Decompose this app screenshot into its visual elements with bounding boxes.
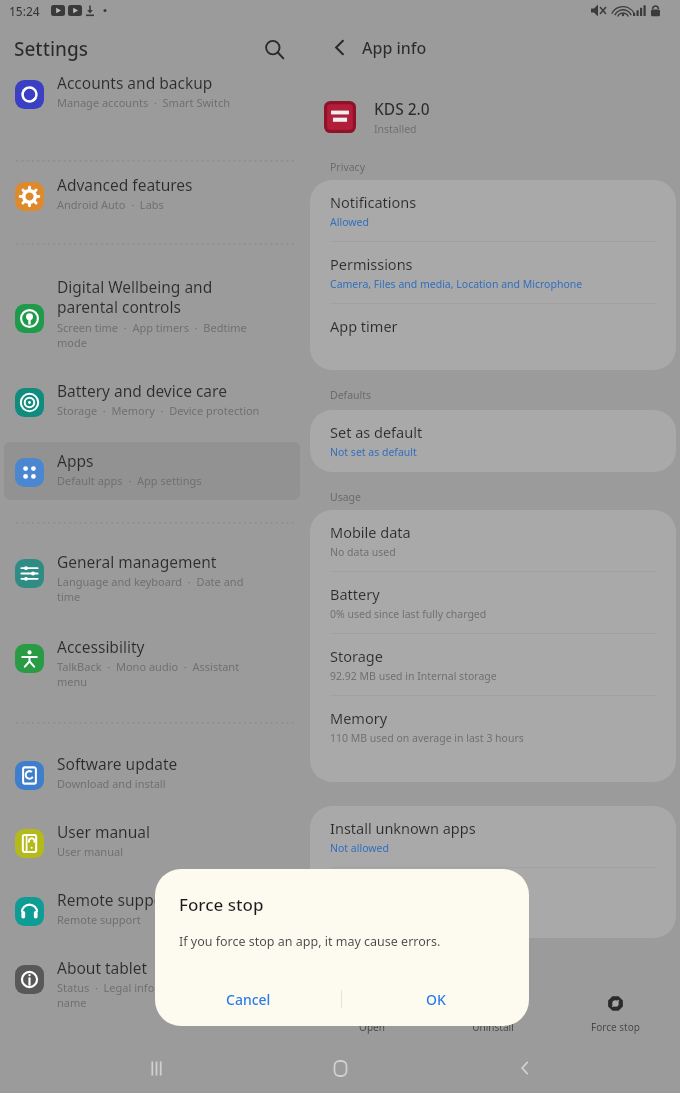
staticText: Apps — [57, 450, 94, 471]
staticText: Not allowed — [330, 841, 389, 855]
staticText: Defaults — [330, 388, 372, 402]
staticText: Android Auto · Labs — [57, 197, 164, 212]
button[interactable] — [4, 745, 300, 797]
staticText: Storage · Memory · Device protection — [57, 403, 260, 418]
button[interactable]: Notifications — [310, 180, 676, 241]
button[interactable]: Force stop — [559, 988, 671, 1034]
staticText: Mobile data — [330, 522, 411, 542]
staticText: User manual — [57, 821, 150, 842]
staticText: TalkBack · Mono audio · Assistant menu — [57, 659, 240, 689]
staticText: Install unknown apps — [330, 818, 476, 838]
button[interactable]: Uninstall — [437, 988, 549, 1034]
staticText: If you force stop an app, it may cause e… — [179, 933, 511, 950]
staticText: Download and install — [57, 776, 166, 791]
staticText: Memory — [330, 708, 388, 728]
staticText: Force stop — [179, 893, 264, 916]
staticText: User manual — [57, 844, 123, 859]
button[interactable]: Set as default — [310, 410, 676, 471]
staticText: Battery and device care — [57, 380, 227, 401]
staticText: Permissions — [330, 254, 413, 274]
button[interactable]: Back — [322, 30, 356, 64]
staticText: General management — [57, 551, 217, 572]
button[interactable]: App details — [310, 868, 676, 929]
staticText: Screen time · App timers · Bedtime mode — [57, 320, 247, 350]
staticText: KDS 2.0 — [374, 98, 430, 119]
staticText: Uninstall — [472, 1020, 514, 1034]
staticText: No data used — [330, 545, 396, 559]
button[interactable]: App timer — [310, 304, 676, 348]
staticText: Remote support — [57, 889, 176, 910]
staticText: 15:24 — [9, 3, 40, 19]
button[interactable] — [4, 813, 300, 865]
staticText: 110 MB used on average in last 3 hours — [330, 731, 524, 745]
button[interactable] — [4, 442, 300, 500]
staticText: Default apps · App settings — [57, 473, 202, 488]
staticText: Allowed — [330, 215, 369, 229]
button[interactable]: Open — [316, 988, 428, 1034]
staticText: Status · Legal information · Tablet name — [57, 980, 242, 1010]
button[interactable] — [4, 64, 300, 116]
staticText: 0% used since last fully charged — [330, 607, 487, 621]
staticText: App info — [362, 37, 427, 59]
staticText: Manage accounts · Smart Switch — [57, 95, 230, 110]
button[interactable]: Recent apps — [127, 1043, 185, 1093]
staticText: Usage — [330, 490, 361, 504]
staticText: Remote support — [57, 912, 141, 927]
staticText: Software update — [57, 753, 178, 774]
staticText: 92.92 MB used in Internal storage — [330, 669, 497, 683]
button[interactable]: Install unknown apps — [310, 806, 676, 867]
button[interactable]: Memory — [310, 696, 676, 757]
staticText: Notifications — [330, 192, 417, 212]
staticText: Advanced features — [57, 174, 193, 195]
staticText: Installed — [374, 122, 417, 136]
button[interactable]: Cancel — [155, 977, 341, 1021]
staticText: Language and keyboard · Date and time — [57, 574, 244, 604]
button[interactable]: Home — [311, 1043, 369, 1093]
staticText: About tablet — [57, 957, 148, 978]
button[interactable] — [4, 881, 300, 933]
button[interactable]: Storage — [310, 634, 676, 695]
staticText: Digital Wellbeing and parental controls — [57, 276, 213, 318]
button[interactable] — [4, 543, 300, 609]
button[interactable] — [4, 949, 300, 1015]
button[interactable]: Permissions — [310, 242, 676, 303]
staticText: Battery — [330, 584, 380, 604]
button[interactable] — [4, 166, 300, 218]
staticText: App timer — [330, 316, 398, 336]
button[interactable]: Mobile data — [310, 510, 676, 571]
button[interactable]: Battery — [310, 572, 676, 633]
staticText: Accounts and backup — [57, 72, 213, 93]
button[interactable]: Back — [496, 1043, 554, 1093]
button[interactable] — [4, 372, 300, 424]
button[interactable] — [4, 628, 300, 694]
staticText: Camera, Files and media, Location and Mi… — [330, 277, 583, 291]
staticText: OK — [426, 990, 446, 1009]
staticText: Not set as default — [330, 445, 417, 459]
button[interactable]: KDS 2.0 — [324, 90, 614, 144]
staticText: Accessibility — [57, 636, 145, 657]
staticText: Open — [359, 1020, 385, 1034]
staticText: Privacy — [330, 160, 366, 174]
staticText: Storage — [330, 646, 383, 666]
staticText: Cancel — [226, 990, 271, 1009]
button[interactable]: Search — [256, 31, 292, 67]
button[interactable]: Settings — [14, 36, 88, 62]
button[interactable] — [4, 268, 300, 346]
staticText: Force stop — [591, 1020, 640, 1034]
staticText: Set as default — [330, 422, 423, 442]
button[interactable]: OK — [342, 977, 529, 1021]
